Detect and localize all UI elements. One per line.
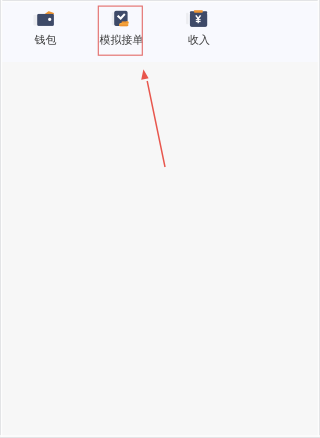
- button[interactable]: 模拟接单: [82, 12, 160, 46]
- staticText: 收入: [188, 33, 210, 47]
- staticText: 模拟接单: [99, 33, 143, 47]
- button[interactable]: 钱包: [6, 12, 84, 46]
- staticText: 钱包: [34, 33, 56, 47]
- button[interactable]: 收入: [160, 12, 238, 46]
